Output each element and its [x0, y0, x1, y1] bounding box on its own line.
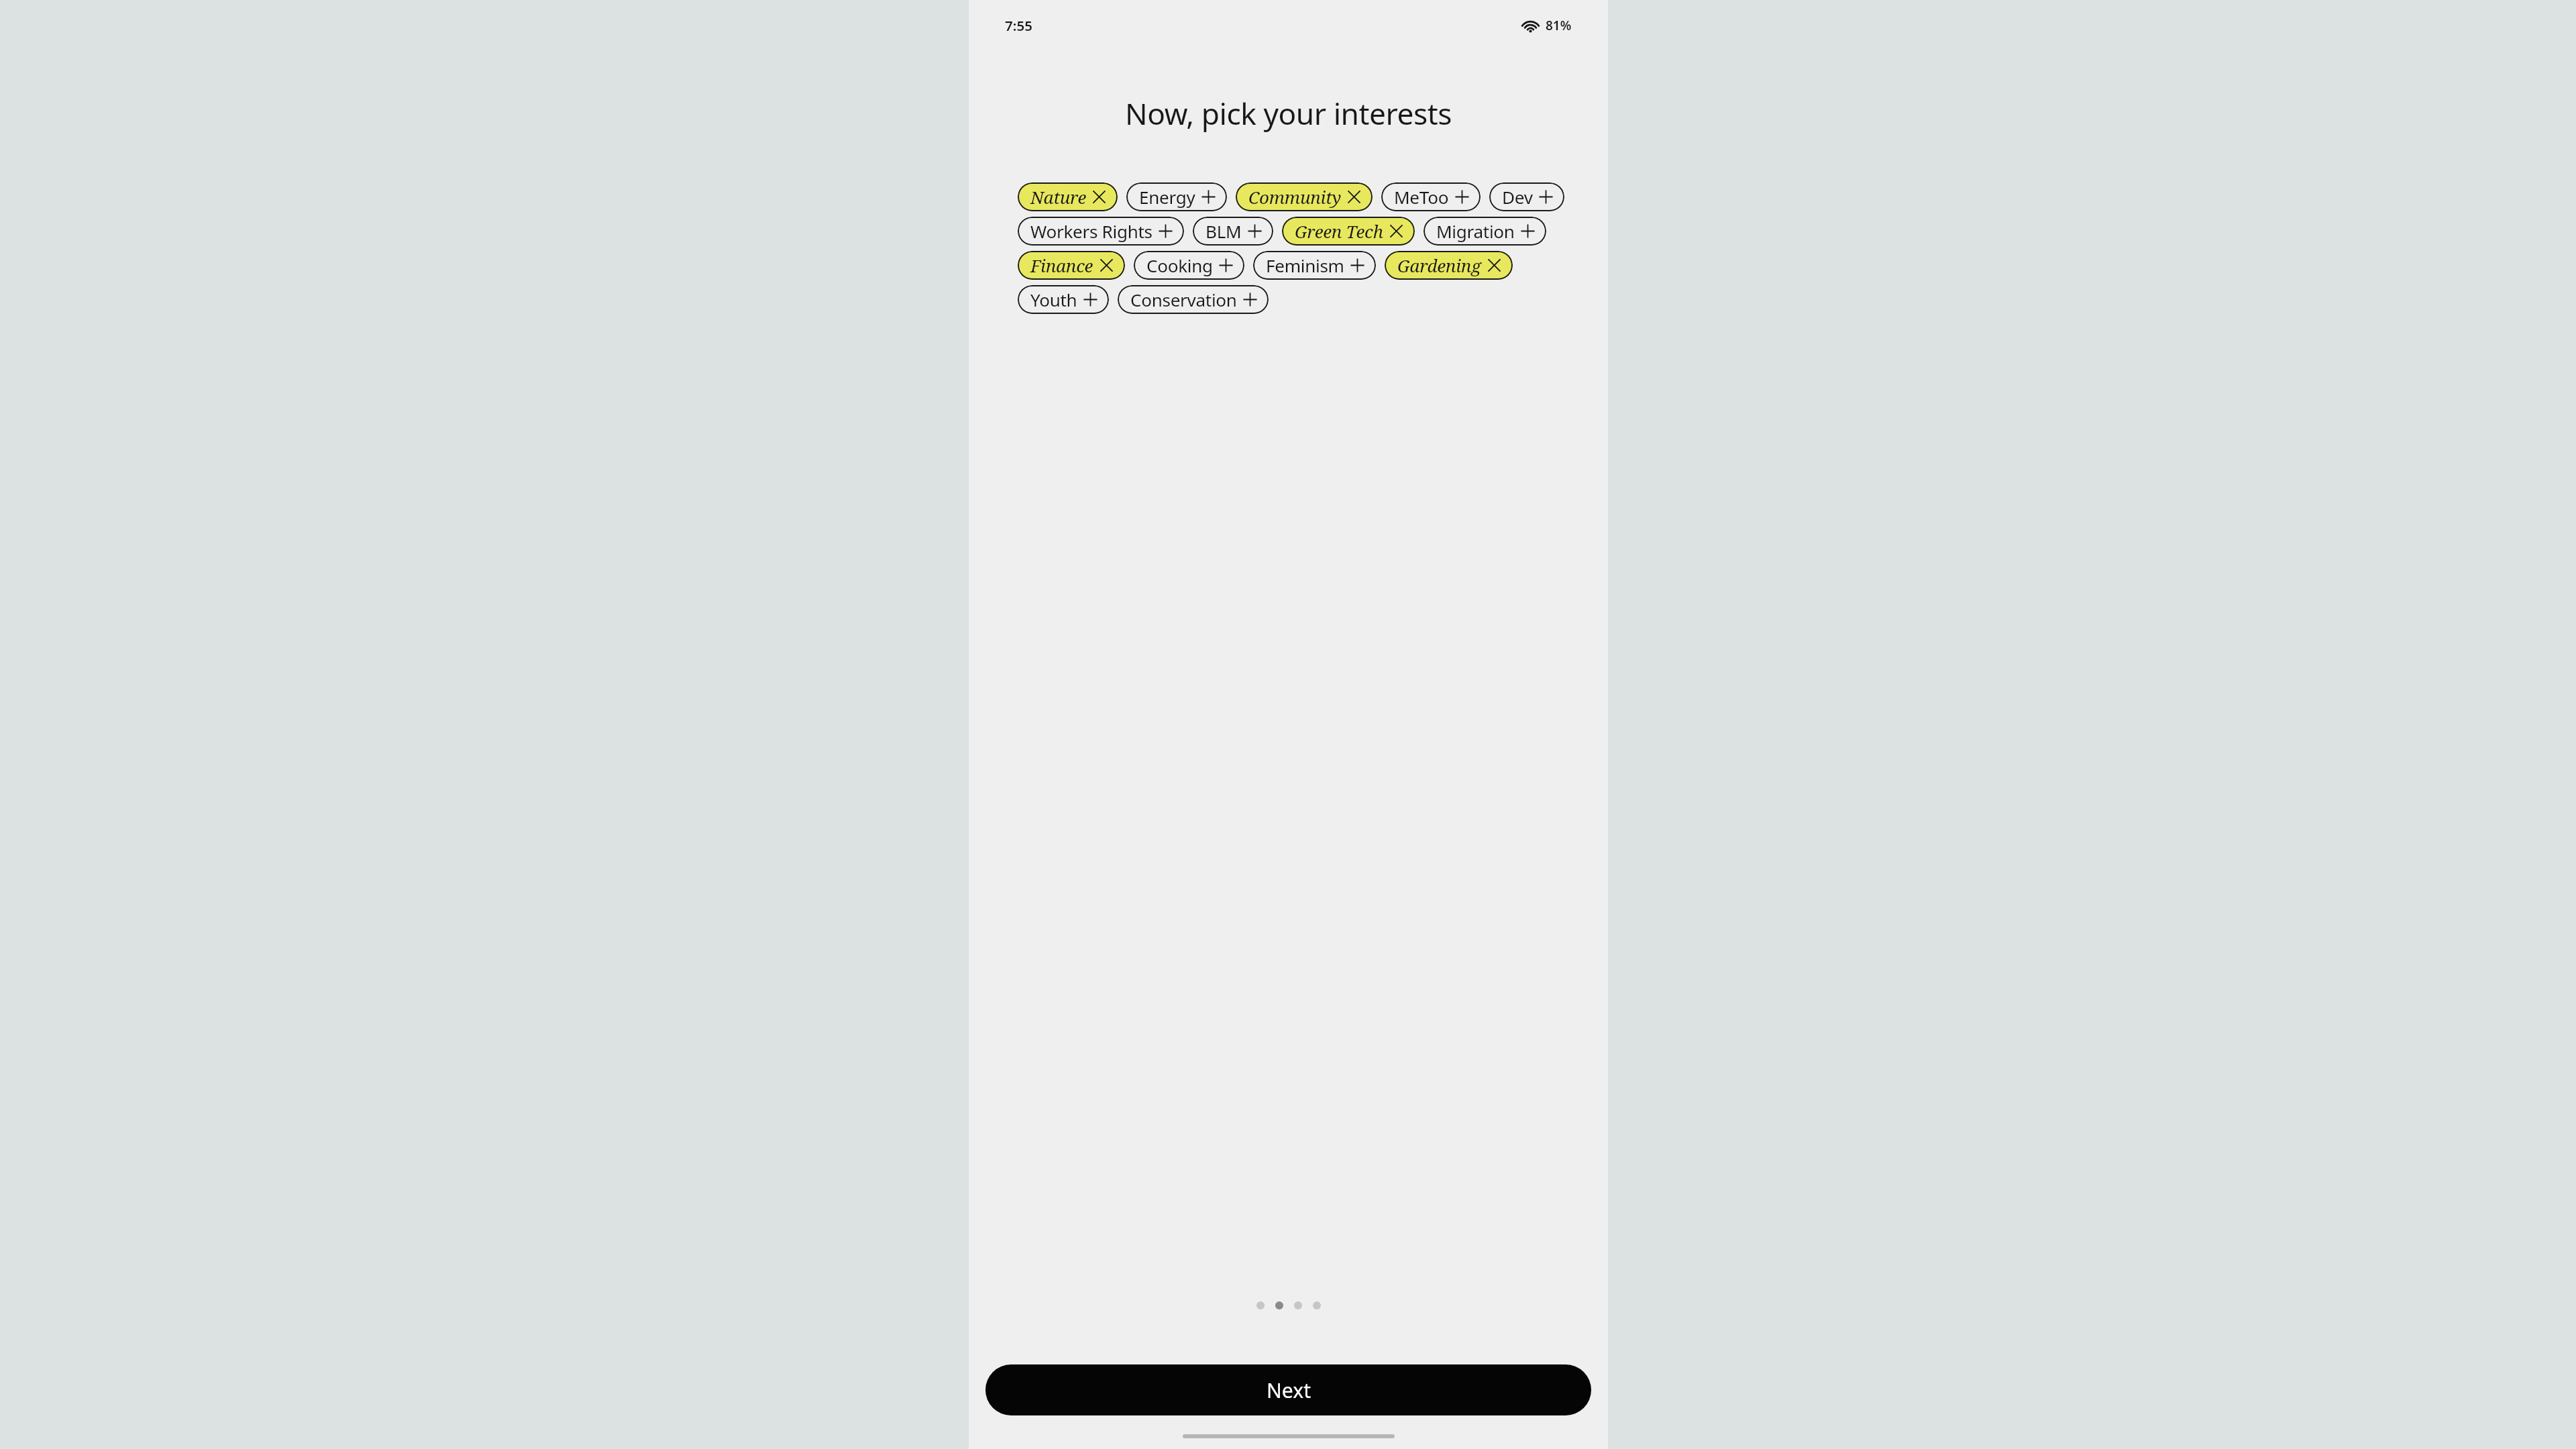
staticText: Next: [1267, 1377, 1311, 1404]
other: Add BLM: [1248, 224, 1262, 238]
staticText: Migration: [1436, 219, 1515, 244]
button[interactable]: Nature: [1018, 182, 1118, 211]
staticText: Community: [1248, 185, 1341, 209]
button[interactable]: [1313, 1301, 1321, 1309]
button[interactable]: [1256, 1301, 1265, 1309]
button[interactable]: Workers Rights: [1018, 217, 1184, 246]
button[interactable]: MeToo: [1381, 182, 1481, 211]
button[interactable]: Dev: [1489, 182, 1564, 211]
other: Add Migration: [1521, 224, 1535, 238]
button[interactable]: Community: [1236, 182, 1373, 211]
staticText: 81%: [1546, 17, 1572, 34]
staticText: Gardening: [1397, 254, 1481, 278]
other: Add Cooking: [1219, 258, 1233, 272]
staticText: Dev: [1502, 185, 1533, 209]
other: Wi-Fi: [1521, 19, 1540, 33]
staticText: MeToo: [1394, 185, 1449, 209]
button[interactable]: Migration: [1424, 217, 1546, 246]
staticText: Energy: [1139, 185, 1195, 209]
other: Remove Community: [1347, 190, 1361, 204]
staticText: Finance: [1030, 254, 1093, 278]
button[interactable]: [1294, 1301, 1302, 1309]
staticText: Workers Rights: [1030, 219, 1152, 244]
other: Add Feminism: [1350, 258, 1364, 272]
other: Remove Nature: [1092, 190, 1106, 204]
button[interactable]: Energy: [1126, 182, 1227, 211]
staticText: Feminism: [1266, 254, 1344, 278]
staticText: Now, pick your interests: [1043, 93, 1534, 133]
button[interactable]: Youth: [1018, 285, 1109, 314]
other: Remove Gardening: [1487, 258, 1501, 272]
staticText: Youth: [1030, 288, 1077, 312]
other: Add Workers Rights: [1159, 224, 1173, 238]
button[interactable]: Feminism: [1253, 251, 1376, 280]
button[interactable]: BLM: [1193, 217, 1273, 246]
staticText: Cooking: [1146, 254, 1213, 278]
other: Add Youth: [1083, 292, 1097, 307]
staticText: Conservation: [1130, 288, 1237, 312]
button[interactable]: Finance: [1018, 251, 1125, 280]
button[interactable]: Conservation: [1118, 285, 1269, 314]
button[interactable]: Green Tech: [1282, 217, 1415, 246]
button[interactable]: Gardening: [1385, 251, 1513, 280]
staticText: BLM: [1205, 219, 1242, 244]
staticText: Green Tech: [1295, 219, 1383, 244]
staticText: 7:55: [1005, 16, 1032, 35]
other: Add Dev: [1539, 190, 1553, 204]
other: Add Conservation: [1243, 292, 1257, 307]
other: Remove Green Tech: [1389, 224, 1403, 238]
button[interactable]: Cooking: [1134, 251, 1244, 280]
other: Add MeToo: [1455, 190, 1469, 204]
button[interactable]: [1275, 1301, 1283, 1309]
other: Add Energy: [1201, 190, 1216, 204]
staticText: Nature: [1030, 185, 1086, 209]
button[interactable]: Next: [985, 1364, 1591, 1415]
other: Remove Finance: [1099, 258, 1114, 272]
